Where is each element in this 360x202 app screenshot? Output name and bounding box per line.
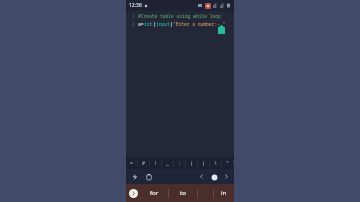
button[interactable]: for [140, 184, 168, 202]
button[interactable]: = [126, 157, 138, 169]
button[interactable]: to [169, 184, 197, 202]
staticText: # [142, 160, 146, 167]
staticText: for [150, 189, 159, 197]
staticText: " [226, 160, 230, 167]
button[interactable]: Home [209, 172, 219, 182]
button[interactable]: Paste [143, 171, 154, 182]
button[interactable]: Run [129, 171, 140, 182]
button[interactable]: Expand suggestions [126, 184, 140, 202]
button[interactable]: Back [197, 172, 206, 181]
staticText: _ [166, 160, 170, 167]
button[interactable]: : [174, 157, 186, 169]
staticText: \ [214, 160, 218, 167]
button[interactable]: ( [186, 157, 198, 169]
staticText: "Enter a number:- " [173, 21, 226, 27]
button[interactable]: \ [210, 157, 222, 169]
button[interactable]: ! [150, 157, 162, 169]
button[interactable]: in [214, 184, 234, 202]
staticText: = [130, 160, 134, 167]
staticText: in [221, 189, 227, 197]
other: Text selection handle [218, 25, 225, 34]
staticText: to [180, 189, 186, 197]
staticText: int [144, 21, 153, 27]
button[interactable]: _ [162, 157, 174, 169]
staticText: ( [170, 21, 173, 27]
staticText: ( [153, 21, 156, 27]
staticText: 1 [132, 13, 135, 19]
button[interactable]: ) [198, 157, 210, 169]
button[interactable]: Forward [222, 172, 231, 181]
button[interactable]: # [138, 157, 150, 169]
button[interactable]: " [222, 157, 234, 169]
staticText: ( [190, 160, 194, 167]
staticText: : [178, 160, 182, 167]
staticText: input [156, 21, 170, 27]
staticText: ) [202, 160, 206, 167]
staticText: a= [138, 21, 144, 27]
staticText: ! [154, 160, 158, 167]
staticText: #Create table using while loop [138, 13, 221, 19]
staticText: 12:36 [129, 2, 142, 9]
staticText: 2 [132, 21, 135, 27]
